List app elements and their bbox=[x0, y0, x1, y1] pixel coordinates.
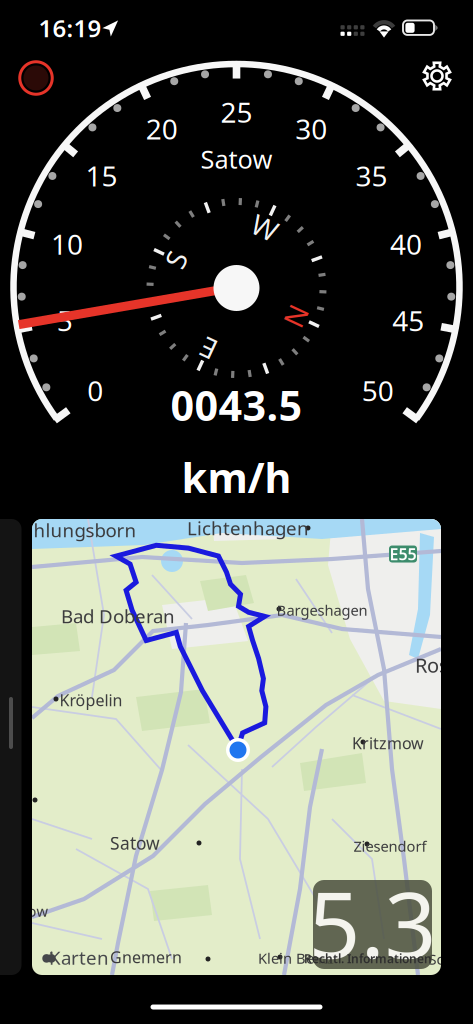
staticText: 5 bbox=[57, 302, 73, 339]
staticText: 0 bbox=[87, 372, 103, 409]
staticText: Kröpelin bbox=[59, 689, 122, 711]
staticText: 0043.5 bbox=[170, 378, 302, 432]
button[interactable]: Settings bbox=[421, 60, 453, 92]
staticText: Bargeshagen bbox=[276, 600, 367, 620]
staticText: 25 bbox=[220, 93, 252, 131]
staticText: 10 bbox=[51, 225, 83, 262]
staticText: 5.3 bbox=[308, 863, 436, 983]
staticText: Klein Belitz bbox=[258, 948, 334, 968]
staticText: W bbox=[252, 209, 278, 246]
staticText: Bad Doberan bbox=[61, 604, 175, 628]
staticText: Rechtl. Informationen bbox=[304, 950, 432, 966]
staticText: 20 bbox=[146, 110, 178, 147]
staticText: 35 bbox=[355, 157, 387, 194]
staticText: Satow bbox=[200, 142, 272, 176]
staticText: Karten bbox=[49, 945, 109, 970]
staticText: E bbox=[200, 330, 216, 367]
staticText: Gnemern bbox=[110, 946, 182, 968]
staticText: Sc bbox=[428, 949, 443, 969]
staticText: S bbox=[168, 241, 183, 278]
staticText: Satow bbox=[110, 831, 160, 854]
staticText: ow bbox=[27, 901, 48, 921]
staticText: 40 bbox=[390, 225, 422, 262]
staticText: 50 bbox=[362, 372, 394, 409]
staticText: N bbox=[287, 298, 308, 335]
staticText: Ziesendorf bbox=[353, 836, 426, 856]
staticText: Ros bbox=[415, 652, 449, 678]
staticText: km/h bbox=[181, 450, 291, 504]
button[interactable]: Stop recording bbox=[14, 56, 58, 100]
staticText: Lichtenhagen bbox=[187, 516, 309, 540]
staticText: 15 bbox=[85, 157, 117, 194]
staticText: ühlungsborn bbox=[21, 518, 136, 542]
staticText: 16:19 bbox=[38, 12, 101, 44]
staticText: 30 bbox=[295, 110, 327, 147]
staticText: 45 bbox=[392, 302, 424, 339]
staticText: Kritzmow bbox=[352, 732, 424, 754]
staticText: E55 bbox=[389, 543, 416, 565]
